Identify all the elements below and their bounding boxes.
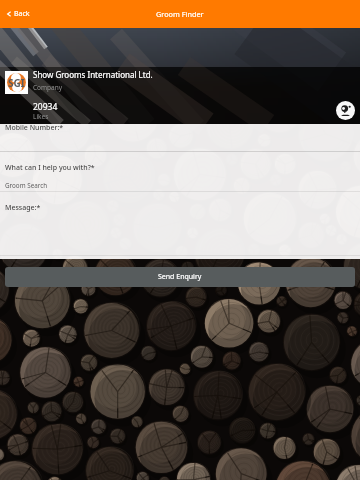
staticText: Company [33, 83, 63, 92]
staticText: Back [14, 9, 30, 19]
staticText: Message:* [5, 203, 41, 213]
staticText: 20934 [33, 101, 58, 113]
staticText: Show Grooms International Ltd. [33, 69, 153, 80]
button[interactable]: Groom Search [0, 178, 360, 192]
button[interactable]: Video call [336, 101, 355, 120]
staticText: Groom Finder [156, 9, 204, 19]
staticText: What can I help you with?* [5, 163, 95, 173]
staticText: SGI [8, 76, 25, 90]
staticText: Groom Search [5, 181, 48, 190]
staticText: Send Enquiry [158, 272, 202, 282]
button[interactable]: Back [3, 4, 33, 24]
button[interactable]: Send Enquiry [5, 267, 355, 287]
staticText: Mobile Number:* [5, 123, 64, 133]
staticText: Likes [33, 112, 49, 121]
